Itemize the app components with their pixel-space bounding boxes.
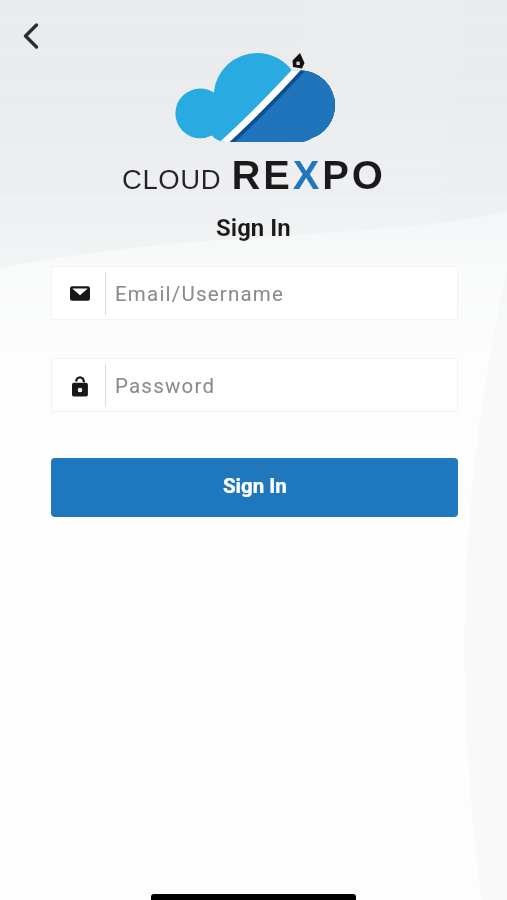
staticText: Sign In bbox=[223, 474, 287, 498]
button[interactable]: Password bbox=[51, 358, 458, 412]
staticText: Sign In bbox=[216, 214, 291, 242]
button[interactable]: Back bbox=[9, 14, 53, 58]
button[interactable]: Sign In bbox=[51, 458, 458, 517]
staticText: Email/Username bbox=[115, 282, 285, 306]
button[interactable]: Email/Username bbox=[51, 266, 458, 320]
staticText: Password bbox=[115, 374, 216, 398]
staticText: CLOUD REXPO bbox=[122, 153, 386, 198]
